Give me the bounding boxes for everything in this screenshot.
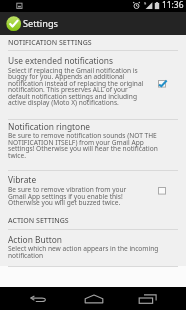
staticText: NOTIFICATION SETTINGS: [8, 39, 92, 47]
button[interactable]: Recent apps: [126, 287, 170, 310]
staticText: notification. This preserves ALL of your: [8, 85, 128, 94]
staticText: NOTIFICATION ITSELF) from your Gmail App: [8, 138, 144, 147]
staticText: ACTION SETTINGS: [8, 217, 69, 225]
staticText: Select if replacing the Gmail notificati…: [8, 66, 138, 75]
staticText: twice.: [8, 151, 26, 160]
staticText: Otherwise you will get buzzed twice.: [8, 198, 121, 207]
staticText: Notification ringtone: [8, 123, 91, 133]
staticText: Gmail App settings if you enable this!: [8, 192, 123, 201]
staticText: Select which new action appears in the i…: [8, 244, 159, 253]
staticText: buggy for you. Appends an additional: [8, 72, 125, 81]
button[interactable]: [0, 230, 186, 265]
button[interactable]: Settings: [0, 12, 186, 35]
staticText: Be sure to remove notification sounds (N…: [8, 131, 157, 140]
staticText: 11:36: [162, 1, 184, 11]
staticText: active display (Moto X) notifications.: [8, 98, 119, 107]
button[interactable]: [0, 120, 186, 170]
staticText: Action Button: [8, 236, 62, 246]
staticText: Use extended notifications: [8, 57, 113, 67]
button[interactable]: [0, 171, 186, 211]
button[interactable]: Home: [72, 287, 116, 310]
staticText: Settings: [23, 19, 58, 30]
staticText: settings! Otherwise you will hear the no…: [8, 144, 158, 153]
staticText: notification: [8, 251, 44, 260]
button[interactable]: Back: [16, 287, 60, 310]
staticText: Be sure to remove vibration from your: [8, 185, 127, 194]
button[interactable]: [0, 51, 186, 118]
staticText: default notification settings and includ…: [8, 92, 137, 101]
staticText: notification instead of replacing the or…: [8, 79, 144, 88]
staticText: Vibrate: [8, 176, 37, 186]
